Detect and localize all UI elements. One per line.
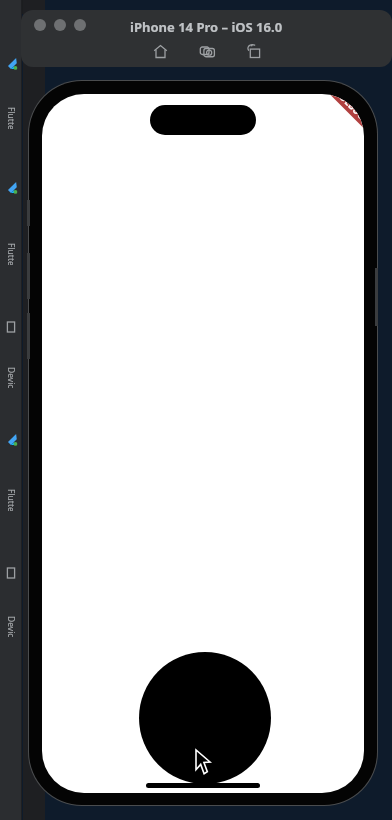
staticText: Flutter Outline xyxy=(5,107,17,129)
staticText: Flutter Performance xyxy=(5,243,17,265)
staticText: iPhone 14 Pro – iOS 16.0 xyxy=(130,18,283,36)
button[interactable]: Flutter Outline xyxy=(0,58,22,164)
button[interactable]: Flutter Performance xyxy=(0,182,22,312)
button[interactable]: Rotate xyxy=(243,40,265,62)
button[interactable]: Window control xyxy=(34,19,46,31)
button[interactable]: Screenshot xyxy=(196,40,218,62)
staticText: Device File Exp xyxy=(5,616,17,638)
button[interactable]: Device File Exp xyxy=(0,568,22,673)
staticText: DEBUG xyxy=(338,94,364,121)
button[interactable]: Home xyxy=(149,40,171,62)
button[interactable]: Window control xyxy=(54,19,66,31)
button[interactable]: Device Manager xyxy=(0,322,22,420)
staticText: Device Manager xyxy=(5,367,17,389)
button[interactable]: Flutter Inspector xyxy=(0,434,22,552)
button[interactable]: Circle xyxy=(139,652,271,784)
staticText: Flutter Inspector xyxy=(5,489,17,511)
button[interactable]: Window control xyxy=(74,19,86,31)
